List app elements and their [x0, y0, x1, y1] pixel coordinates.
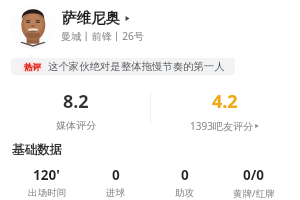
- staticText: 0/0: [243, 166, 265, 184]
- button[interactable]: 4.2: [165, 89, 285, 133]
- staticText: 120': [33, 166, 60, 184]
- staticText: 出场时间: [28, 187, 66, 199]
- staticText: 热评: [24, 62, 41, 72]
- staticText: 这个家伙绝对是整体拖慢节奏的第一人: [48, 60, 225, 73]
- button[interactable]: 0: [150, 166, 219, 199]
- button[interactable]: 8.2: [15, 89, 136, 132]
- button[interactable]: 0/0: [219, 166, 288, 200]
- staticText: 基础数据: [12, 142, 62, 158]
- button[interactable]: 0: [81, 166, 150, 199]
- staticText: 0: [112, 166, 120, 184]
- staticText: 8.2: [63, 89, 89, 114]
- staticText: 曼城丨前锋丨26号: [61, 29, 144, 43]
- button[interactable]: 120': [12, 166, 81, 199]
- staticText: 0: [181, 166, 189, 184]
- button[interactable]: 萨维尼奥: [62, 9, 131, 27]
- staticText: 进球: [106, 187, 125, 199]
- staticText: 4.2: [212, 89, 238, 114]
- staticText: 萨维尼奥: [62, 9, 121, 27]
- staticText: 媒体评分: [56, 119, 96, 132]
- staticText: 1393吧友评分: [190, 119, 253, 133]
- button[interactable]: Player avatar: [11, 5, 55, 49]
- button[interactable]: 热评: [21, 58, 235, 75]
- staticText: 黄牌/红牌: [233, 187, 275, 200]
- staticText: 助攻: [175, 187, 194, 199]
